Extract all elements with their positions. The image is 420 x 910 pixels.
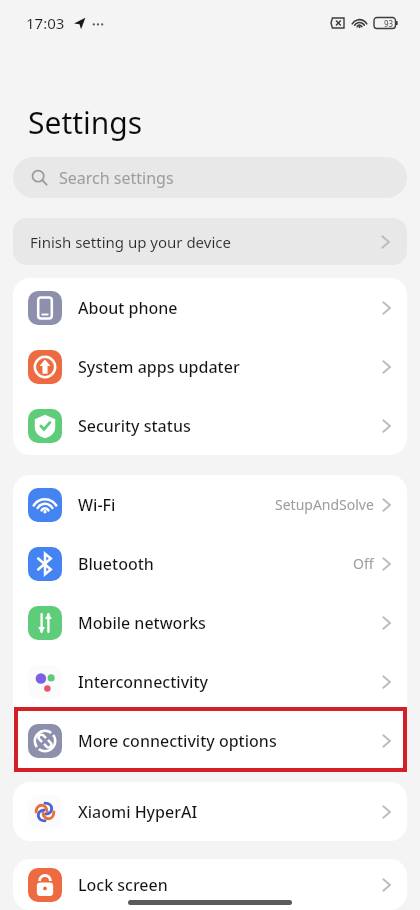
button[interactable]: Finish setting up your device	[13, 218, 407, 265]
staticText: Off	[353, 554, 374, 573]
staticText: SetupAndSolve	[275, 495, 374, 514]
button[interactable]: System apps updater	[13, 337, 407, 396]
button[interactable]: Bluetooth	[13, 534, 407, 593]
button[interactable]: About phone	[13, 278, 407, 337]
staticText: More connectivity options	[78, 730, 277, 752]
staticText: 93	[384, 18, 394, 29]
staticText: Interconnectivity	[78, 671, 208, 693]
staticText: Bluetooth	[78, 553, 154, 575]
button[interactable]: Lock screen	[13, 859, 407, 910]
button[interactable]: Xiaomi HyperAI	[13, 782, 407, 841]
button[interactable]: Search settings	[13, 157, 407, 198]
staticText: About phone	[78, 297, 178, 319]
button[interactable]: Wi-Fi	[13, 475, 407, 534]
staticText: Lock screen	[78, 874, 168, 896]
staticText: Mobile networks	[78, 612, 206, 634]
button[interactable]: Mobile networks	[13, 593, 407, 652]
staticText: 17:03	[26, 13, 65, 33]
button[interactable]: Interconnectivity	[13, 652, 407, 711]
staticText: Finish setting up your device	[30, 232, 231, 252]
button[interactable]: Security status	[13, 396, 407, 455]
staticText: System apps updater	[78, 356, 240, 378]
staticText: Xiaomi HyperAI	[78, 801, 198, 823]
staticText: Settings	[28, 102, 143, 143]
button[interactable]: More connectivity options	[13, 711, 407, 770]
staticText: Security status	[78, 415, 191, 437]
staticText: Wi-Fi	[78, 494, 116, 516]
staticText: Search settings	[59, 167, 174, 189]
